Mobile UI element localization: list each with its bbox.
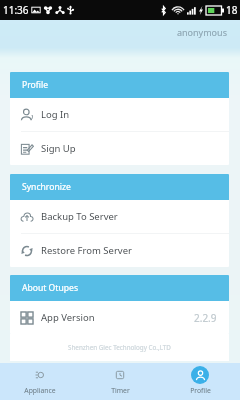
button[interactable]: Appliance xyxy=(0,363,80,400)
staticText: Sign Up xyxy=(41,142,76,155)
button[interactable]: Log In xyxy=(10,98,229,131)
staticText: 2.2.9 xyxy=(194,311,217,325)
button[interactable]: Profile xyxy=(160,363,240,400)
staticText: Restore From Server xyxy=(41,244,132,257)
staticText: Backup To Server xyxy=(41,210,118,223)
button[interactable]: anonymous xyxy=(177,26,227,38)
button[interactable]: Profile xyxy=(10,72,229,98)
staticText: Timer xyxy=(111,386,130,395)
button[interactable]: About Otupes xyxy=(10,275,229,301)
button[interactable]: Synchronize xyxy=(10,174,229,200)
button[interactable]: App Version xyxy=(10,301,229,334)
button[interactable]: Backup To Server xyxy=(10,200,229,233)
button[interactable]: Sign Up xyxy=(10,132,229,165)
staticText: Appliance xyxy=(24,386,56,395)
staticText: Log In xyxy=(41,108,70,121)
staticText: Synchronize xyxy=(22,181,71,193)
staticText: 11:36 xyxy=(3,3,29,17)
staticText: App Version xyxy=(41,311,95,324)
staticText: Profile xyxy=(22,79,49,91)
button[interactable]: Timer xyxy=(80,363,160,400)
button[interactable]: Restore From Server xyxy=(10,234,229,267)
staticText: About Otupes xyxy=(22,282,78,294)
staticText: Profile xyxy=(190,386,211,395)
staticText: 18 xyxy=(226,3,238,17)
staticText: Shenzhen Giec Technology Co.,LTD xyxy=(68,343,171,352)
